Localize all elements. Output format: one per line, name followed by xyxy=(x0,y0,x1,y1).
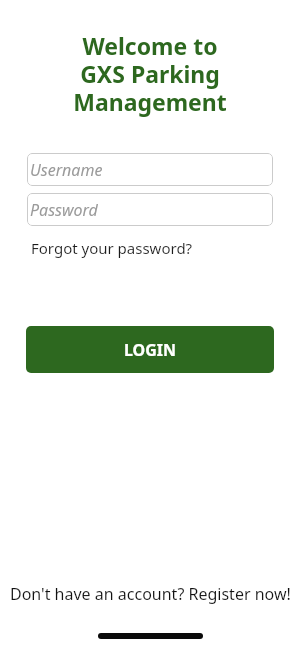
staticText: Welcome to GXS Parking Management xyxy=(73,30,227,118)
button[interactable]: Forgot your password? xyxy=(31,238,193,258)
button[interactable]: Password xyxy=(27,193,273,226)
button[interactable]: Don't have an account? Register now! xyxy=(10,583,291,605)
staticText: Username xyxy=(30,159,103,181)
staticText: LOGIN xyxy=(124,339,177,361)
button[interactable]: Username xyxy=(27,153,273,186)
button[interactable]: LOGIN xyxy=(26,326,274,373)
staticText: Password xyxy=(30,199,98,221)
